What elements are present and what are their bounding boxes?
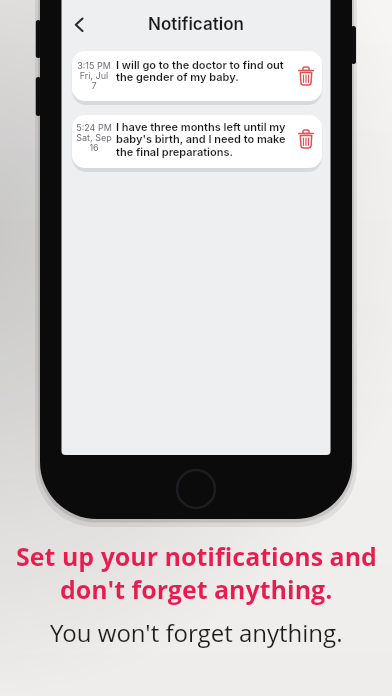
button[interactable] <box>296 129 316 149</box>
staticText: I have three months left until my baby's… <box>116 120 286 159</box>
button[interactable] <box>68 12 94 38</box>
button[interactable] <box>296 66 316 86</box>
staticText: I will go to the doctor to find out the … <box>116 58 284 84</box>
staticText: Notification <box>148 14 244 35</box>
staticText: 5:24 PM Sat, Sep 16 <box>76 122 112 153</box>
button[interactable] <box>72 115 322 168</box>
staticText: Set up your notifications and <box>16 539 377 573</box>
staticText: You won't forget anything. <box>50 616 343 649</box>
staticText: don't forget anything. <box>60 572 333 606</box>
button[interactable] <box>72 51 322 101</box>
staticText: 3:15 PM Fri, Jul 7 <box>77 60 111 91</box>
